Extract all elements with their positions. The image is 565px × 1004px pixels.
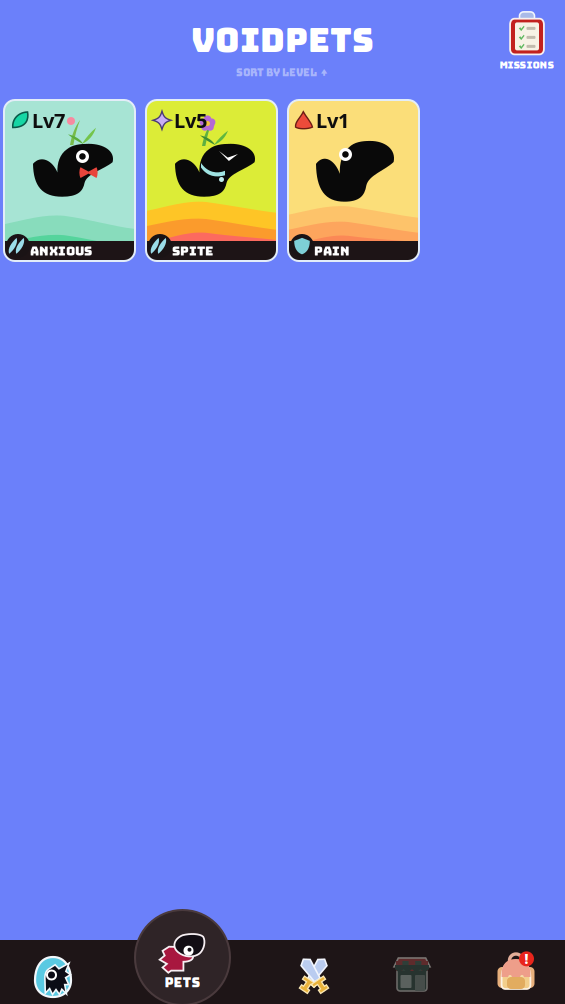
button[interactable]: SORT BY LEVEL ↑ [236,66,329,79]
button[interactable]: Shop [394,956,430,992]
staticText: ANXIOUS [30,243,92,259]
staticText: PETS [164,974,200,991]
staticText: MISSIONS [499,58,554,72]
staticText: SPITE [172,243,213,259]
staticText: VOIDPETS [191,18,374,62]
button[interactable]: PETS [135,910,230,1004]
button[interactable]: Inventory [496,953,536,993]
staticText: Lv5 [174,107,207,134]
button[interactable]: Eggs [33,955,73,999]
button[interactable]: Lv7 [4,100,135,261]
button[interactable]: Lv1 [288,100,419,261]
button[interactable]: Missions [487,11,565,73]
staticText: Lv7 [32,107,65,134]
staticText: SORT BY LEVEL ↑ [236,66,329,79]
staticText: ! [524,950,528,968]
staticText: PAIN [314,243,350,259]
staticText: Lv1 [316,107,349,134]
button[interactable]: Battle [294,955,334,995]
button[interactable]: Lv5 [146,100,277,261]
